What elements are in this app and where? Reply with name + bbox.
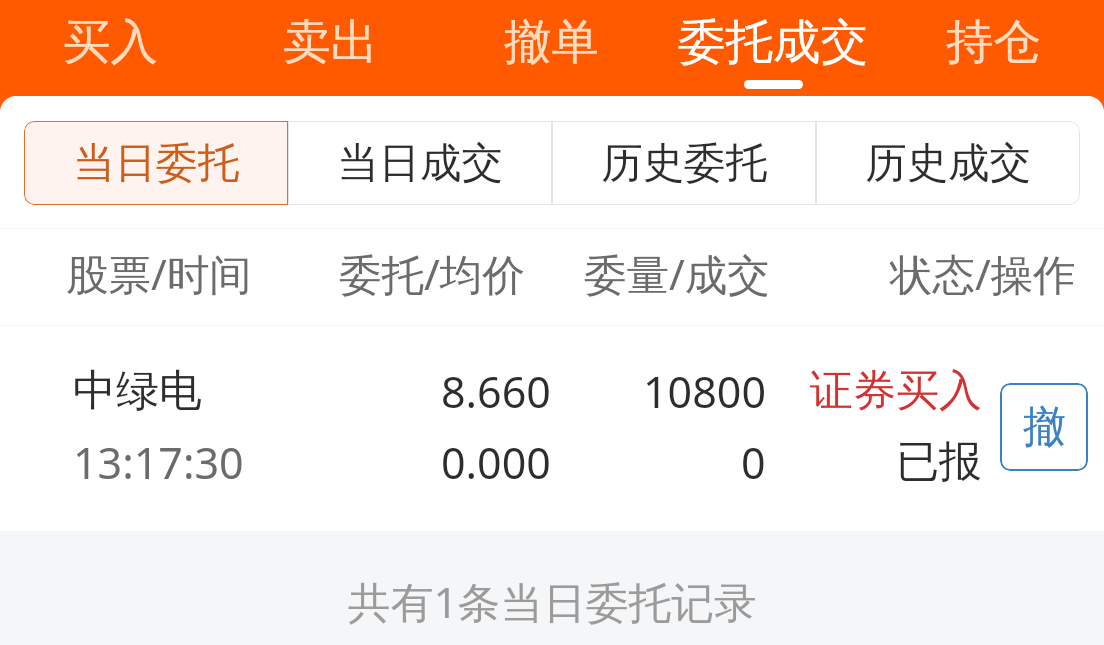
staticText: 历史委托 xyxy=(601,137,767,189)
button[interactable]: 持仓 xyxy=(883,0,1104,96)
staticText: 持仓 xyxy=(946,12,1041,72)
staticText: 历史成交 xyxy=(865,137,1031,189)
staticText: 委托成交 xyxy=(678,12,868,72)
button[interactable]: 历史委托 xyxy=(552,121,816,205)
button[interactable]: 卖出 xyxy=(220,0,441,96)
staticText: 撤 xyxy=(1023,400,1066,454)
staticText: 共有1条当日委托记录 xyxy=(348,572,757,630)
staticText: 买入 xyxy=(63,12,158,72)
button[interactable]: 当日委托 xyxy=(24,121,288,205)
button[interactable]: 当日成交 xyxy=(288,121,552,205)
staticText: 撤单 xyxy=(504,12,599,72)
button[interactable]: 中绿电 xyxy=(0,326,1104,531)
button[interactable]: 撤单 xyxy=(1000,383,1088,471)
staticText: 已报 xyxy=(896,435,982,489)
staticText: 状态/操作 xyxy=(890,245,1076,303)
button[interactable]: 撤单 xyxy=(441,0,662,96)
staticText: 当日成交 xyxy=(337,137,503,189)
staticText: 8.660 xyxy=(441,362,551,421)
staticText: 委量/成交 xyxy=(584,245,770,303)
staticText: 13:17:30 xyxy=(73,433,244,492)
staticText: 委托/均价 xyxy=(339,245,525,303)
staticText: 0 xyxy=(741,433,766,492)
staticText: 卖出 xyxy=(283,12,378,72)
staticText: 10800 xyxy=(643,362,766,421)
button[interactable]: 委托成交 xyxy=(662,0,883,96)
staticText: 当日委托 xyxy=(73,137,239,189)
button[interactable]: 买入 xyxy=(0,0,220,96)
button[interactable]: 历史成交 xyxy=(816,121,1080,205)
staticText: 0.000 xyxy=(441,433,551,492)
staticText: 中绿电 xyxy=(73,364,202,418)
staticText: 证券买入 xyxy=(810,364,982,418)
staticText: 股票/时间 xyxy=(66,245,252,303)
